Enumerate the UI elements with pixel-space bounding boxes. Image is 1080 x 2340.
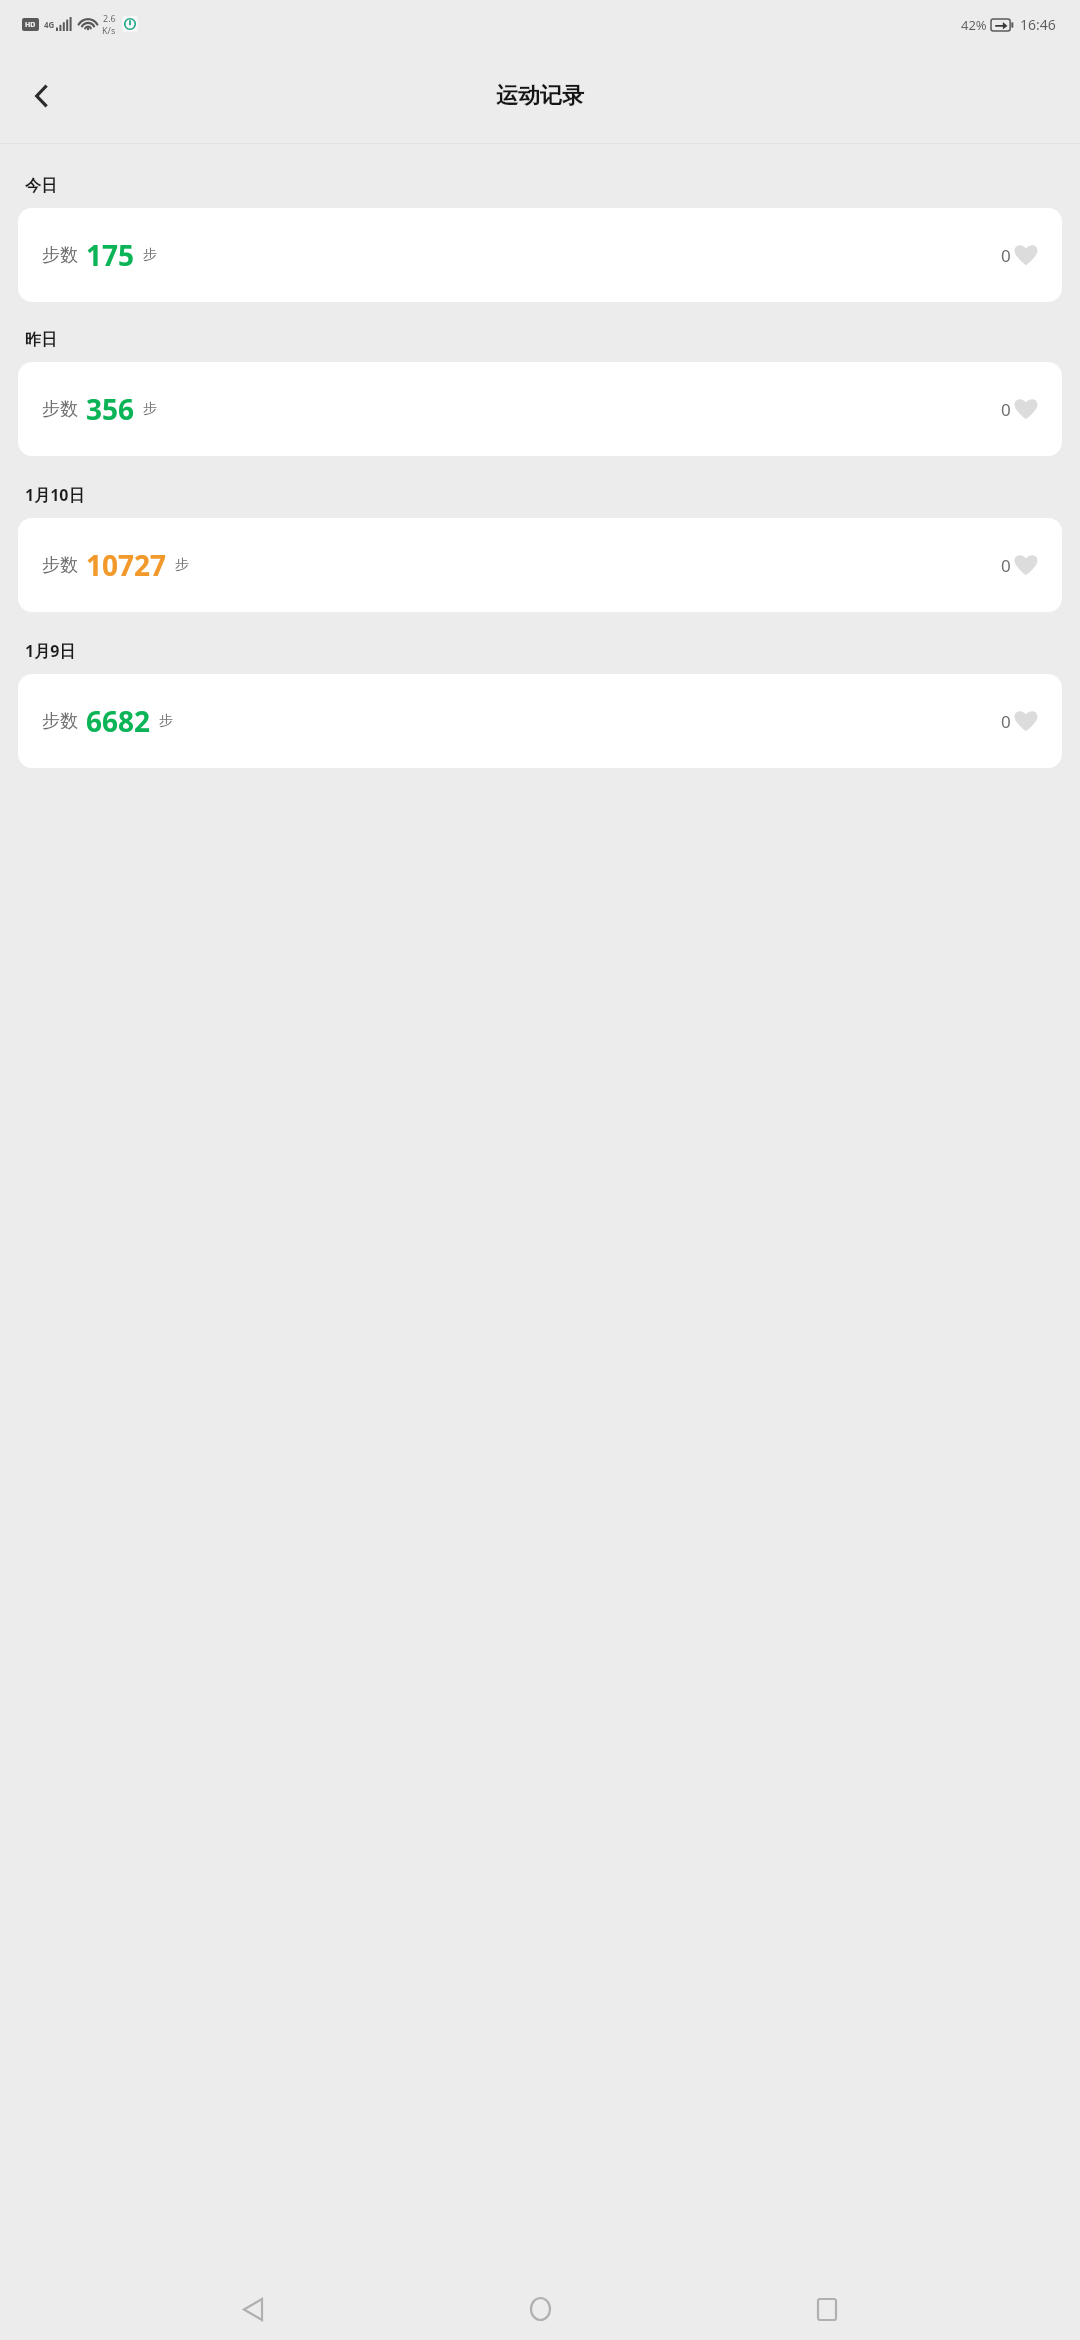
staticText: 步 (143, 400, 157, 418)
button[interactable]: 步数 (18, 674, 1062, 768)
staticText: 1月9日 (25, 640, 76, 662)
staticText: 步数 (42, 554, 78, 577)
staticText: 步数 (42, 398, 78, 421)
staticText: 1月10日 (25, 484, 85, 506)
staticText: 4G (44, 19, 55, 30)
button[interactable]: Home (506, 2278, 574, 2340)
staticText: 步 (175, 556, 189, 574)
staticText: 步数 (42, 710, 78, 733)
button[interactable]: Recents (793, 2278, 861, 2340)
staticText: 356 (86, 390, 135, 428)
staticText: 42% (961, 16, 987, 34)
staticText: 今日 (25, 176, 57, 196)
staticText: 0 (1001, 710, 1011, 733)
button[interactable]: 步数 (18, 362, 1062, 456)
staticText: 6682 (86, 702, 151, 740)
staticText: K/s (102, 24, 116, 36)
staticText: 16:46 (1020, 15, 1056, 34)
staticText: HD (25, 20, 36, 30)
staticText: 175 (86, 236, 135, 274)
staticText: 运动记录 (496, 82, 584, 110)
staticText: 2.6 (103, 12, 116, 24)
staticText: 昨日 (25, 330, 57, 350)
button[interactable]: 步数 (18, 518, 1062, 612)
staticText: 0 (1001, 554, 1011, 577)
staticText: 步 (143, 246, 157, 264)
staticText: 步 (159, 712, 173, 730)
staticText: 0 (1001, 244, 1011, 267)
staticText: 0 (1001, 398, 1011, 421)
button[interactable]: 步数 (18, 208, 1062, 302)
button[interactable]: Back (219, 2278, 287, 2340)
staticText: 步数 (42, 244, 78, 267)
staticText: 10727 (86, 546, 167, 584)
button[interactable]: Back (18, 72, 66, 120)
